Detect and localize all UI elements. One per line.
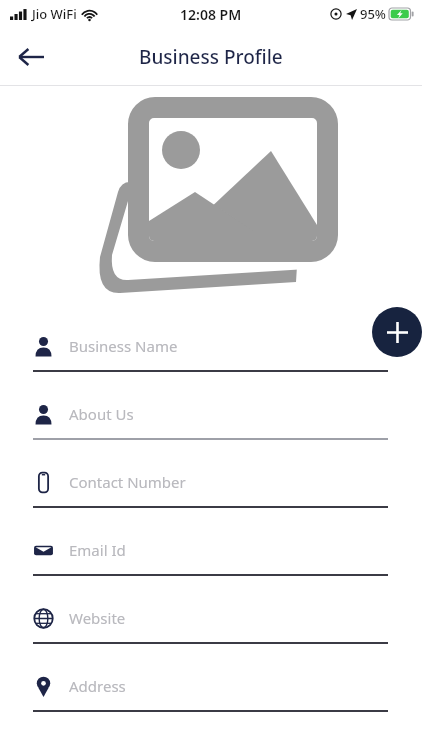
button[interactable]: Business image xyxy=(0,86,422,308)
button[interactable]: Email Id xyxy=(0,526,422,594)
staticText: Jio WiFi xyxy=(32,5,77,23)
button[interactable]: Back xyxy=(6,32,56,82)
staticText: Contact Number xyxy=(69,472,186,492)
staticText: 95% xyxy=(360,5,386,23)
button[interactable]: Contact Number xyxy=(0,458,422,526)
button[interactable]: Website xyxy=(0,594,422,662)
staticText: Email Id xyxy=(69,540,126,560)
button[interactable]: Add photo xyxy=(372,307,422,357)
staticText: 12:08 PM xyxy=(180,5,242,24)
staticText: Business Profile xyxy=(139,44,283,70)
button[interactable]: Business Name xyxy=(0,322,422,390)
staticText: About Us xyxy=(69,404,134,424)
staticText: Address xyxy=(69,676,126,696)
button[interactable]: About Us xyxy=(0,390,422,458)
staticText: Business Name xyxy=(69,336,178,356)
staticText: Website xyxy=(69,608,126,628)
button[interactable]: Address xyxy=(0,662,422,730)
